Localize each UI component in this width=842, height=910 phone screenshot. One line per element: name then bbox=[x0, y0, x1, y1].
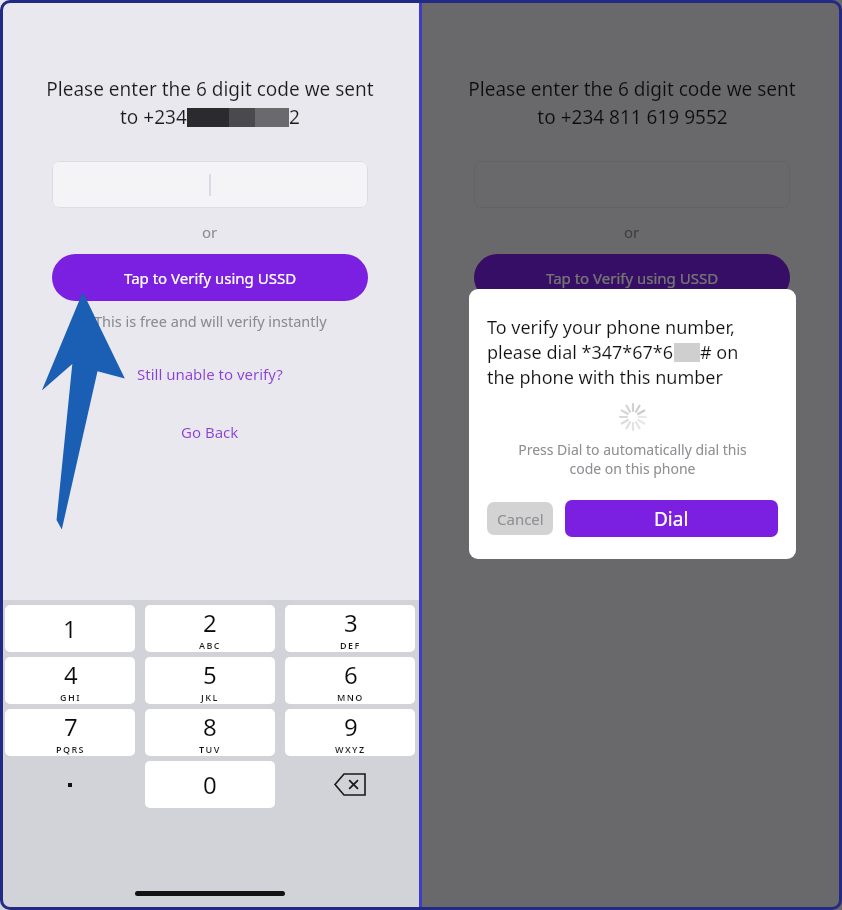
button[interactable]: Go Back bbox=[597, 416, 667, 448]
button[interactable]: 3 bbox=[285, 605, 415, 652]
staticText: 0 bbox=[203, 768, 217, 801]
staticText: MNO bbox=[337, 691, 364, 703]
button[interactable]: 8 bbox=[145, 709, 275, 756]
staticText: Cancel bbox=[497, 509, 544, 529]
button[interactable]: Cancel bbox=[487, 502, 553, 535]
button[interactable]: Period bbox=[5, 761, 135, 808]
staticText: 8 bbox=[203, 710, 217, 743]
button[interactable]: Still unable to verify? bbox=[553, 358, 711, 390]
button[interactable]: 5 bbox=[145, 657, 275, 704]
staticText: 7 bbox=[64, 710, 78, 743]
staticText: PQRS bbox=[56, 743, 85, 755]
button[interactable]: Dial bbox=[565, 500, 778, 537]
staticText: Please enter the 6 digit code we sent bbox=[468, 76, 796, 102]
staticText: or bbox=[202, 222, 218, 242]
staticText: please dial *347*67*6 bbox=[487, 340, 674, 365]
staticText: DEF bbox=[340, 639, 361, 651]
staticText: Still unable to verify? bbox=[559, 364, 705, 384]
button[interactable]: Go Back bbox=[175, 416, 245, 448]
staticText: 2 bbox=[203, 606, 217, 639]
button[interactable]: 9 bbox=[285, 709, 415, 756]
button[interactable]: 2 bbox=[145, 605, 275, 652]
staticText: Please enter the 6 digit code we sent bbox=[46, 76, 374, 102]
staticText: This is free and will verify instantly bbox=[516, 311, 749, 331]
staticText: Go Back bbox=[181, 422, 239, 442]
staticText: 1 bbox=[63, 612, 77, 645]
staticText: To verify your phone number, bbox=[487, 315, 735, 340]
button[interactable] bbox=[52, 161, 368, 208]
button[interactable]: Tap to Verify using USSD bbox=[474, 254, 790, 301]
staticText: 3 bbox=[344, 606, 358, 639]
button[interactable]: 0 bbox=[145, 761, 275, 808]
staticText: Go Back bbox=[603, 422, 661, 442]
staticText: Tap to Verify using USSD bbox=[546, 268, 719, 288]
staticText: ABC bbox=[199, 639, 221, 651]
staticText: 9 bbox=[344, 710, 358, 743]
staticText: or bbox=[624, 222, 640, 242]
staticText: WXYZ bbox=[335, 743, 366, 755]
button[interactable]: Still unable to verify? bbox=[131, 358, 289, 390]
staticText: 4 bbox=[64, 658, 78, 691]
staticText: 5 bbox=[203, 658, 217, 691]
staticText: to +234 bbox=[120, 104, 187, 130]
staticText: the phone with this number bbox=[487, 365, 723, 390]
button[interactable]: 4 bbox=[5, 657, 135, 704]
button[interactable]: Backspace bbox=[285, 761, 415, 808]
staticText: 2 bbox=[289, 104, 300, 130]
staticText: Tap to Verify using USSD bbox=[124, 268, 297, 288]
button[interactable]: 6 bbox=[285, 657, 415, 704]
button[interactable]: 1 bbox=[5, 605, 135, 652]
staticText: Dial bbox=[654, 506, 689, 532]
staticText: This is free and will verify instantly bbox=[94, 311, 327, 331]
staticText: JKL bbox=[201, 691, 219, 703]
staticText: 6 bbox=[344, 658, 358, 691]
button[interactable]: 7 bbox=[5, 709, 135, 756]
button[interactable]: Tap to Verify using USSD bbox=[52, 254, 368, 301]
staticText: # on bbox=[700, 340, 739, 365]
staticText: Still unable to verify? bbox=[137, 364, 283, 384]
staticText: Press Dial to automatically dial this co… bbox=[518, 440, 747, 478]
staticText: to +234 811 619 9552 bbox=[537, 104, 728, 130]
staticText: GHI bbox=[60, 691, 81, 703]
staticText: TUV bbox=[199, 743, 221, 755]
